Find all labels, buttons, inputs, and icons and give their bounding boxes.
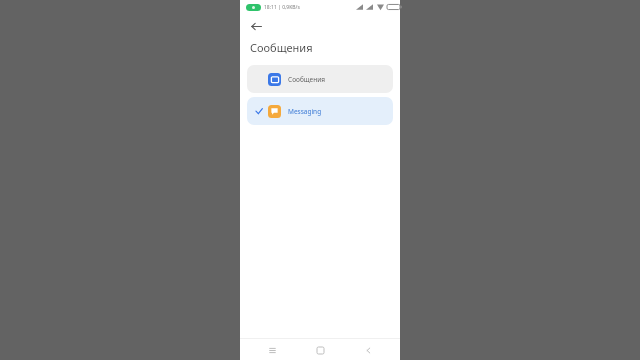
button[interactable]: Back <box>358 340 378 360</box>
button[interactable]: Back <box>248 18 264 34</box>
button[interactable]: Messaging <box>247 97 393 125</box>
staticText: 18:11 | 0,9KB/s <box>264 4 300 11</box>
staticText: Messaging <box>288 107 322 116</box>
staticText: Сообщения <box>288 75 325 84</box>
button[interactable]: Home <box>310 340 330 360</box>
staticText: Сообщения <box>250 40 313 55</box>
button[interactable]: Recents <box>262 340 282 360</box>
button[interactable]: Сообщения <box>247 65 393 93</box>
